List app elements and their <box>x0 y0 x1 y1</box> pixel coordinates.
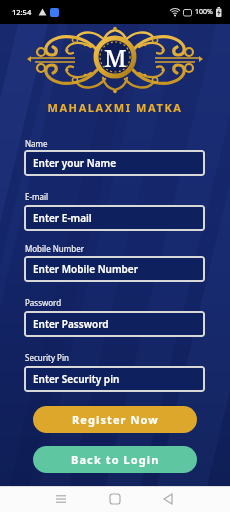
staticText: Enter E-mail <box>33 211 92 225</box>
button[interactable]: Enter your Name <box>24 150 205 176</box>
staticText: Enter Mobile Number <box>33 262 138 276</box>
button[interactable]: Enter Password <box>24 311 205 337</box>
button[interactable]: Back to Login <box>33 446 197 473</box>
button[interactable]: Enter Security pin <box>24 366 205 392</box>
staticText: Enter Password <box>33 317 109 331</box>
staticText: MAHALAXMI MATKA <box>0 100 230 115</box>
staticText: Register Now <box>72 412 159 427</box>
staticText: Mobile Number <box>25 243 84 254</box>
staticText: 12:54 <box>12 7 32 17</box>
staticText: Enter Security pin <box>33 372 120 386</box>
button[interactable]: Enter Mobile Number <box>24 256 205 282</box>
staticText: Back to Login <box>71 452 160 467</box>
staticText: Password <box>25 297 62 308</box>
staticText: Security Pin <box>25 352 69 363</box>
button[interactable]: Register Now <box>33 406 197 433</box>
staticText: Name <box>25 138 48 149</box>
staticText: 100% <box>195 7 213 17</box>
button[interactable]: Enter E-mail <box>24 205 205 231</box>
staticText: E-mail <box>25 191 49 202</box>
staticText: M <box>104 41 127 74</box>
staticText: Enter your Name <box>33 156 117 170</box>
